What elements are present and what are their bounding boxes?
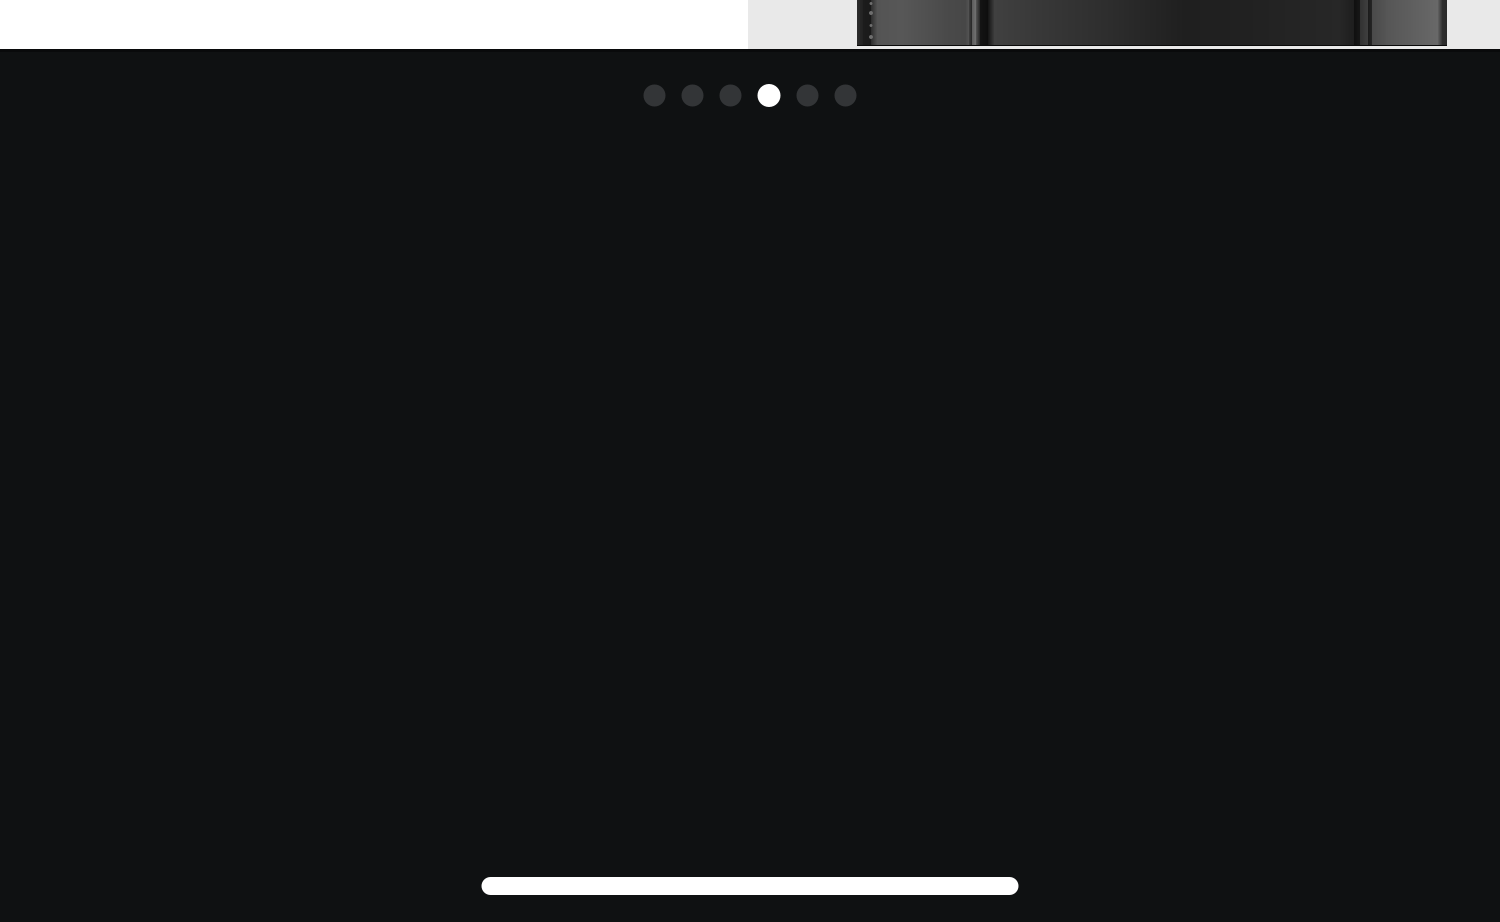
button[interactable]: Photo 1	[643, 84, 665, 106]
button[interactable]: Photo 6	[834, 84, 856, 106]
button[interactable]: Photo 2	[681, 84, 703, 106]
button[interactable]: Photo 4	[757, 84, 780, 107]
button[interactable]: Product photo	[0, 0, 1500, 49]
button[interactable]: Photo 5	[796, 84, 818, 106]
button[interactable]: Photo 3	[719, 84, 741, 106]
